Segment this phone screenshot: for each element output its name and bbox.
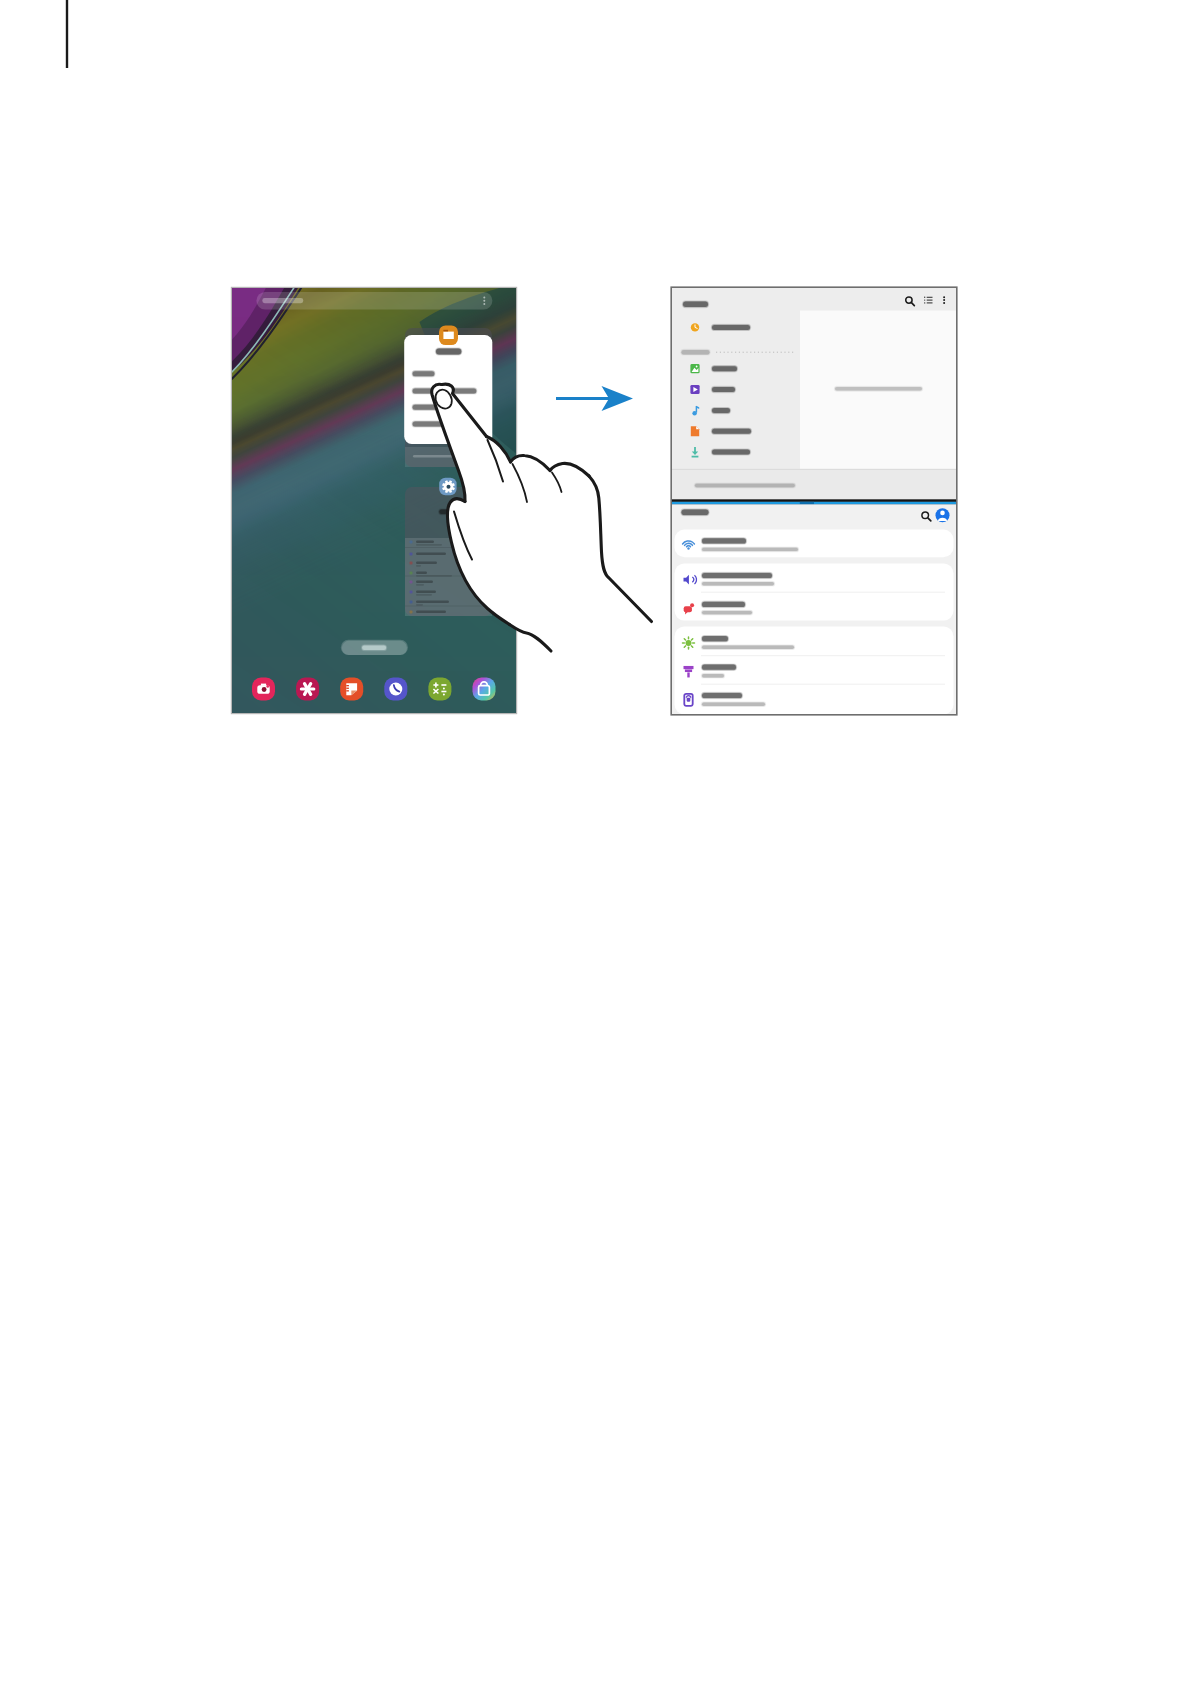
button[interactable]: Images (678, 360, 798, 379)
button[interactable]: Calculator (428, 678, 451, 701)
button[interactable]: Display (675, 626, 953, 655)
button[interactable]: Audio (678, 401, 798, 420)
button[interactable]: More options (936, 294, 952, 310)
button[interactable]: Notifications (675, 592, 953, 621)
button[interactable]: Samsung account (935, 507, 953, 523)
button[interactable]: Documents (678, 422, 798, 441)
button[interactable]: Search files (900, 294, 918, 310)
button[interactable]: Finder search (232, 292, 492, 310)
button[interactable]: View as list (920, 294, 938, 310)
button[interactable]: Downloads (678, 443, 798, 462)
button[interactable]: Sounds and vibration (675, 563, 953, 592)
button[interactable]: Videos (678, 380, 798, 399)
button[interactable]: Settings recent task (405, 487, 492, 616)
button[interactable]: Wallpaper (675, 655, 953, 684)
button[interactable]: Samsung Notes (340, 678, 363, 701)
button[interactable]: Clock (384, 678, 407, 701)
button[interactable]: Close all (343, 640, 407, 656)
button[interactable]: Recent files (678, 320, 798, 340)
button[interactable]: Search settings (917, 507, 935, 523)
button[interactable]: Connections (675, 529, 953, 557)
button[interactable]: Lock screen (675, 684, 953, 713)
button[interactable]: My Files app options (405, 335, 492, 444)
button[interactable]: Camera (252, 678, 275, 701)
button[interactable]: Galaxy Store (472, 678, 495, 701)
button[interactable]: Gallery (296, 678, 319, 701)
